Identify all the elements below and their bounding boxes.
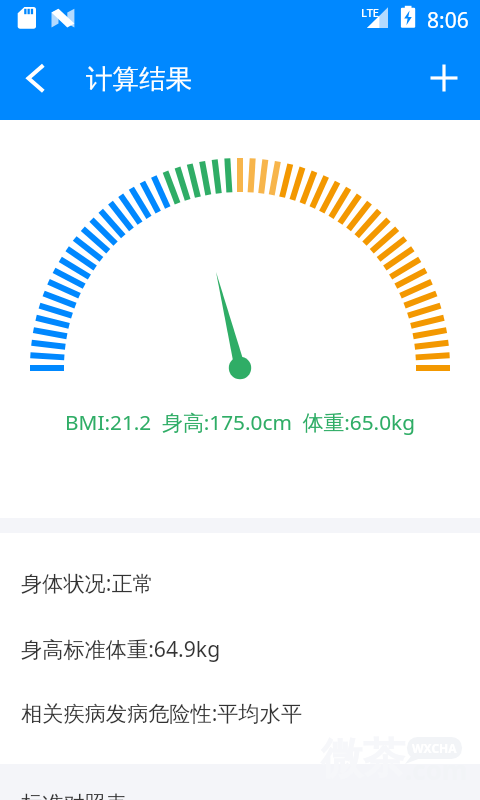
button[interactable]: Back [8,54,56,102]
staticText: BMI:21.2 身高:175.0cm 体重:65.0kg [65,408,415,436]
staticText: .com [405,752,468,787]
button[interactable]: 相关疾病发病危险性:平均水平 [0,689,480,735]
button[interactable]: 身高标准体重:64.9kg [0,625,480,671]
button[interactable]: 身体状况:正常 [0,559,480,605]
button[interactable]: Add [420,54,468,102]
staticText: 身体状况:正常 [21,568,154,597]
staticText: LTE [361,5,379,20]
staticText: 相关疾病发病危险性:平均水平 [21,698,303,727]
staticText: 身高标准体重:64.9kg [21,634,221,663]
button[interactable]: 标准对照表 [0,781,480,800]
staticText: 8:06 [427,6,469,35]
staticText: 标准对照表 [21,791,127,800]
staticText: 微茶 [321,733,405,786]
staticText: 计算结果 [86,62,192,95]
staticText: WXCHA [412,740,457,756]
